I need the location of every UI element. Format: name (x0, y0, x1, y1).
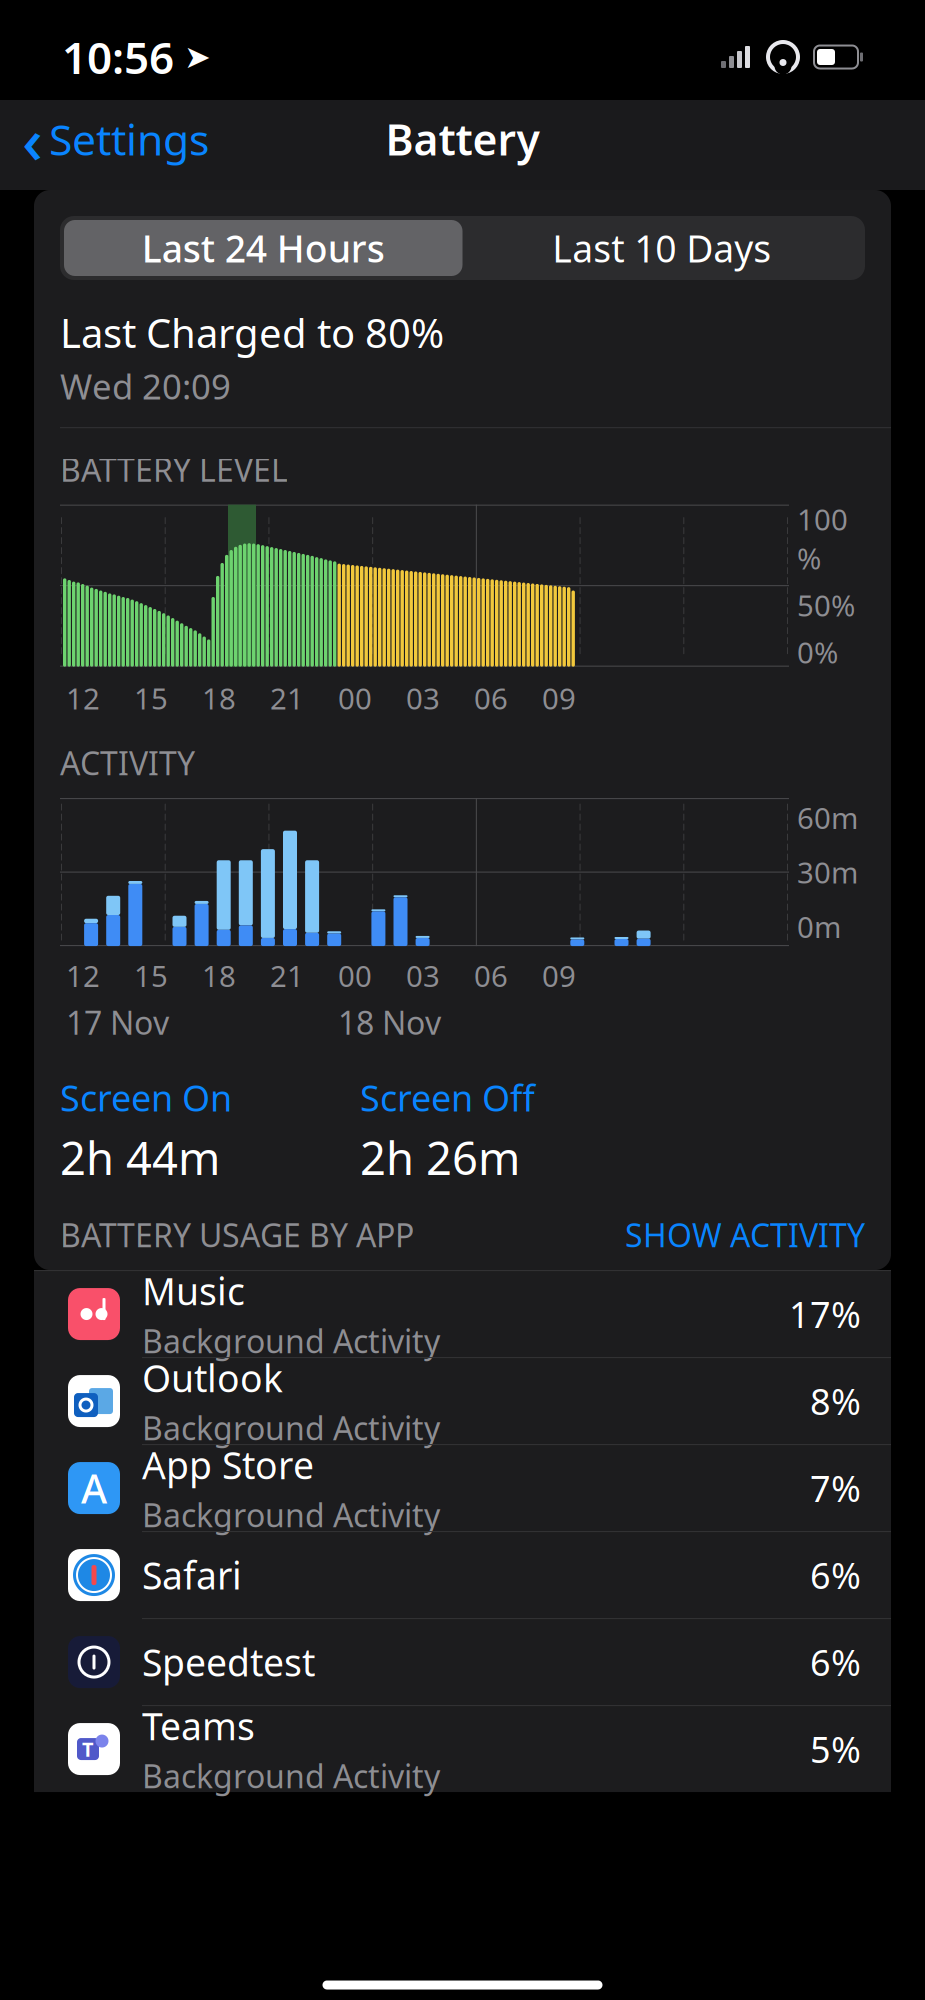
staticText: Teams (142, 1701, 255, 1751)
button[interactable]: Outlook (34, 1358, 891, 1445)
button[interactable]: Last 24 Hours (64, 220, 462, 276)
staticText: Settings (49, 111, 209, 167)
staticText: 21 (270, 679, 304, 718)
staticText: 03 (406, 679, 440, 718)
button[interactable]: SHOW ACTIVITY (625, 1214, 865, 1256)
staticText: 18 (202, 679, 236, 718)
staticText: BATTERY LEVEL (60, 448, 288, 491)
staticText: ACTIVITY (60, 742, 195, 784)
staticText: Screen Off (360, 1073, 535, 1121)
staticText: 09 (542, 956, 576, 995)
staticText: 17 Nov (66, 1001, 169, 1044)
staticText: 50% (797, 586, 855, 625)
staticText: Outlook (142, 1353, 283, 1403)
staticText: T (82, 1736, 94, 1762)
button[interactable]: Music (34, 1271, 891, 1358)
staticText: 15 (134, 679, 168, 718)
staticText: Background Activity (142, 1407, 440, 1449)
staticText: 09 (542, 679, 576, 718)
staticText: Background Activity (142, 1755, 440, 1797)
staticText: Wed 20:09 (60, 363, 231, 409)
button[interactable]: Safari (34, 1532, 891, 1619)
staticText: Last 24 Hours (142, 223, 385, 273)
staticText: 5% (810, 1725, 861, 1773)
staticText: 06 (474, 956, 508, 995)
staticText: 30m (797, 853, 858, 892)
staticText: 6% (810, 1638, 861, 1686)
staticText: Safari (142, 1550, 242, 1600)
staticText: Last 10 Days (552, 223, 771, 273)
staticText: ‹ (22, 96, 43, 181)
button[interactable]: Speedtest (34, 1619, 891, 1706)
staticText: App Store (142, 1440, 314, 1490)
staticText: 2h 44m (60, 1127, 220, 1188)
staticText: 00 (338, 956, 372, 995)
staticText: Battery (385, 111, 539, 167)
button[interactable]: T (34, 1706, 891, 1792)
staticText: Music (142, 1266, 245, 1316)
staticText: 12 (66, 679, 100, 718)
staticText: 100% (797, 500, 848, 578)
staticText: Screen On (60, 1073, 232, 1121)
staticText: 6% (810, 1551, 861, 1599)
staticText: 60m (797, 798, 858, 837)
button[interactable]: A (34, 1445, 891, 1532)
staticText: Last Charged to 80% (60, 306, 444, 359)
button[interactable]: Last 10 Days (462, 220, 861, 276)
staticText: 06 (474, 679, 508, 718)
staticText: SHOW ACTIVITY (625, 1214, 865, 1256)
staticText: 7% (810, 1464, 861, 1512)
staticText: 03 (406, 956, 440, 995)
staticText: 18 Nov (338, 1001, 441, 1044)
staticText: BATTERY USAGE BY APP (60, 1214, 414, 1256)
staticText: 2h 26m (360, 1127, 520, 1188)
staticText: ➤ (174, 39, 211, 75)
staticText: 0% (797, 633, 838, 672)
staticText: 12 (66, 956, 100, 995)
staticText: 0m (797, 907, 841, 946)
staticText: 17% (789, 1290, 861, 1338)
staticText: 10:56 (62, 28, 174, 86)
staticText: Background Activity (142, 1494, 440, 1536)
staticText: 8% (810, 1377, 861, 1425)
staticText: A (81, 1461, 107, 1515)
button[interactable]: ‹ (0, 90, 209, 187)
staticText: 15 (134, 956, 168, 995)
staticText: 21 (270, 956, 304, 995)
staticText: 18 (202, 956, 236, 995)
staticText: 00 (338, 679, 372, 718)
staticText: Background Activity (142, 1320, 440, 1362)
staticText: Speedtest (142, 1637, 315, 1687)
